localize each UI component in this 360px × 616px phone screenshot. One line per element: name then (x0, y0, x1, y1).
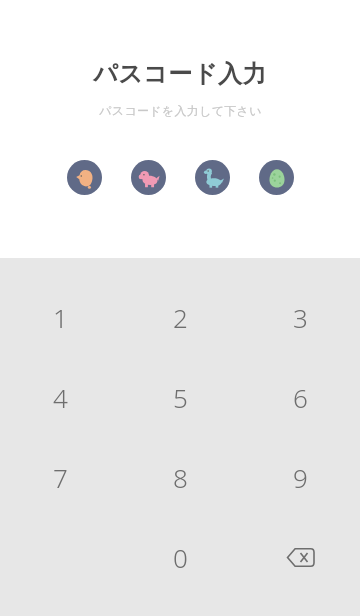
button[interactable]: 2 (120, 277, 240, 357)
button[interactable]: 6 (240, 357, 360, 437)
button[interactable]: Passcode digit 3 (195, 160, 230, 195)
button[interactable]: 0 (120, 517, 240, 597)
button[interactable]: 7 (0, 437, 120, 517)
button[interactable]: 1 (0, 277, 120, 357)
staticText: 2 (173, 300, 188, 335)
button[interactable]: 5 (120, 357, 240, 437)
button[interactable]: Backspace (240, 517, 360, 597)
staticText: 0 (173, 540, 188, 575)
button[interactable]: 3 (240, 277, 360, 357)
button[interactable]: Passcode digit 2 (131, 160, 166, 195)
staticText: 9 (293, 460, 308, 495)
staticText: 4 (53, 380, 68, 415)
staticText: 8 (173, 460, 188, 495)
button[interactable]: 4 (0, 357, 120, 437)
button[interactable]: 9 (240, 437, 360, 517)
button[interactable]: Passcode digit 4 (259, 160, 294, 195)
staticText: パスコードを入力して下さい (99, 103, 262, 118)
staticText: 5 (173, 380, 188, 415)
staticText: 7 (53, 460, 68, 495)
button[interactable]: 8 (120, 437, 240, 517)
button[interactable]: Passcode digit 1 (67, 160, 102, 195)
staticText: 3 (293, 300, 308, 335)
staticText: パスコード入力 (93, 59, 267, 89)
staticText: 1 (53, 300, 68, 335)
staticText: 6 (293, 380, 308, 415)
